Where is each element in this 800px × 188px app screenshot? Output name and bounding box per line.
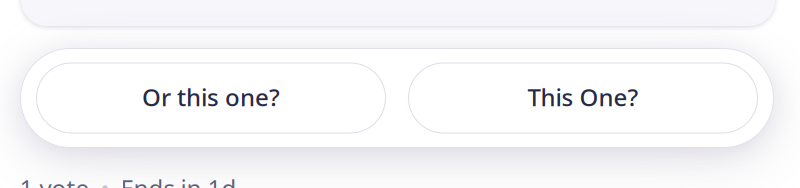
staticText: • (100, 172, 109, 188)
staticText: Ends in 1d (120, 172, 236, 188)
staticText: Or this one? (142, 81, 280, 113)
staticText: 1 vote (19, 172, 89, 188)
staticText: This One? (527, 81, 638, 113)
button[interactable]: Or this one? (36, 63, 385, 133)
button[interactable]: This One? (408, 63, 757, 133)
